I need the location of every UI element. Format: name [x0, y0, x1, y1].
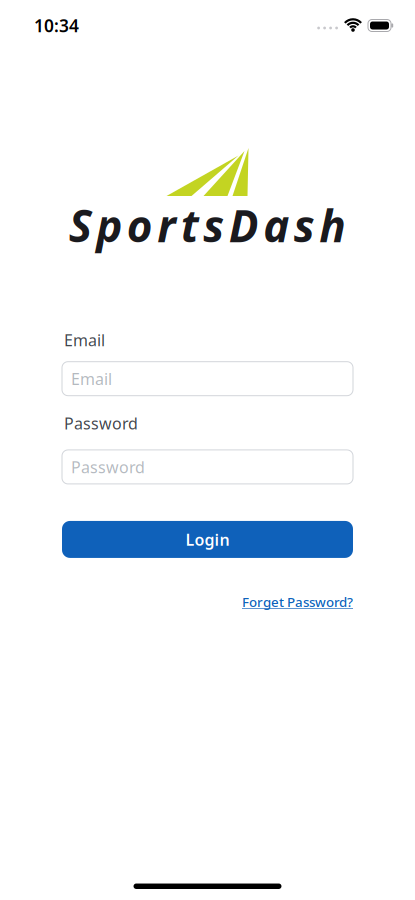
- button[interactable]: Password: [62, 450, 353, 484]
- staticText: SportsDash: [69, 196, 346, 254]
- button[interactable]: Login: [62, 521, 353, 558]
- button[interactable]: Forget Password?: [242, 593, 353, 611]
- staticText: Login: [185, 529, 229, 550]
- button[interactable]: Email: [62, 362, 353, 396]
- staticText: Email: [64, 329, 105, 351]
- staticText: Forget Password?: [242, 593, 353, 611]
- staticText: Email: [71, 368, 112, 389]
- staticText: Password: [71, 456, 145, 477]
- staticText: Password: [64, 413, 138, 434]
- staticText: 10:34: [34, 14, 79, 37]
